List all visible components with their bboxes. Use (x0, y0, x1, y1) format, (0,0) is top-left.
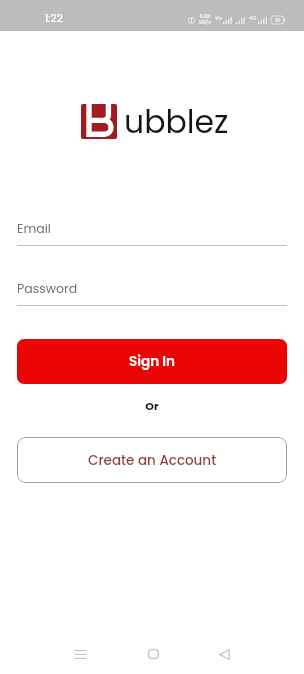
staticText: Email (17, 220, 51, 237)
staticText: Password (17, 280, 78, 297)
button[interactable]: Email (17, 220, 287, 246)
staticText: 91 (275, 17, 280, 24)
button[interactable]: Recent apps (57, 634, 103, 674)
button[interactable]: Password (17, 280, 287, 306)
staticText: Create an Account (88, 451, 217, 470)
staticText: 4G (249, 15, 257, 22)
staticText: ubblez (124, 100, 229, 144)
button[interactable]: Home (130, 634, 176, 674)
staticText: 1:22 (45, 11, 63, 26)
staticText: Or (0, 398, 304, 413)
button[interactable]: Sign In (17, 339, 287, 384)
staticText: Vo (215, 15, 222, 22)
staticText: 0.00 KB/s (199, 13, 211, 25)
button[interactable]: Back (201, 634, 247, 674)
button[interactable]: Create an Account (17, 437, 287, 483)
staticText: Sign In (129, 352, 175, 371)
